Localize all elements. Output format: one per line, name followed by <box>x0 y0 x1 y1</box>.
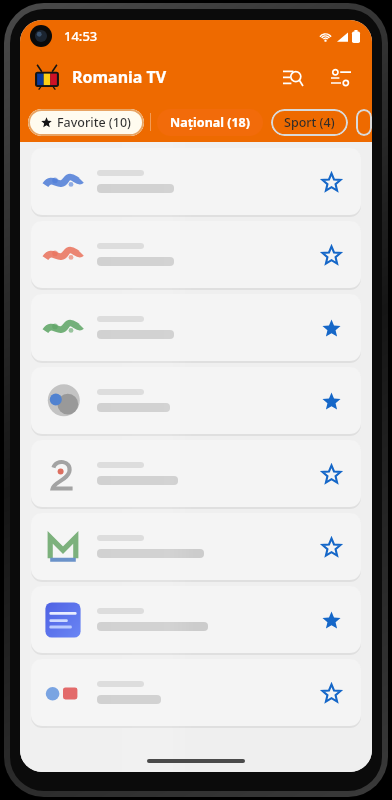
button[interactable]: Sport (4) <box>271 109 348 136</box>
button[interactable]: Remove from favorites <box>31 367 361 434</box>
button[interactable]: Add to favorites <box>31 440 361 507</box>
staticText: 14:53 <box>64 27 98 45</box>
button[interactable]: Remove from favorites <box>311 308 351 348</box>
button[interactable]: Add to favorites <box>31 221 361 288</box>
button[interactable]: Remove from favorites <box>311 600 351 640</box>
button[interactable]: Național (18) <box>157 109 263 136</box>
button[interactable]: Remove from favorites <box>31 294 361 361</box>
button[interactable]: Add to favorites <box>311 235 351 275</box>
button[interactable]: Add to favorites <box>311 673 351 713</box>
button[interactable]: Remove from favorites <box>311 381 351 421</box>
button[interactable]: Region <box>356 109 372 136</box>
button[interactable]: Add to favorites <box>311 162 351 202</box>
staticText: Sport (4) <box>284 114 335 131</box>
staticText: Romania TV <box>72 66 167 88</box>
button[interactable]: Add to favorites <box>311 454 351 494</box>
button[interactable]: Add to favorites <box>31 659 361 726</box>
button[interactable]: Add to favorites <box>31 148 361 215</box>
button[interactable]: Search <box>276 60 310 94</box>
button[interactable]: Remove from favorites <box>31 586 361 653</box>
button[interactable]: Add to favorites <box>31 513 361 580</box>
button[interactable]: Settings <box>324 60 358 94</box>
button[interactable]: Add to favorites <box>311 527 351 567</box>
staticText: Favorite (10) <box>57 114 131 131</box>
staticText: Național (18) <box>170 114 250 131</box>
button[interactable]: Favorite (10) <box>28 109 144 136</box>
